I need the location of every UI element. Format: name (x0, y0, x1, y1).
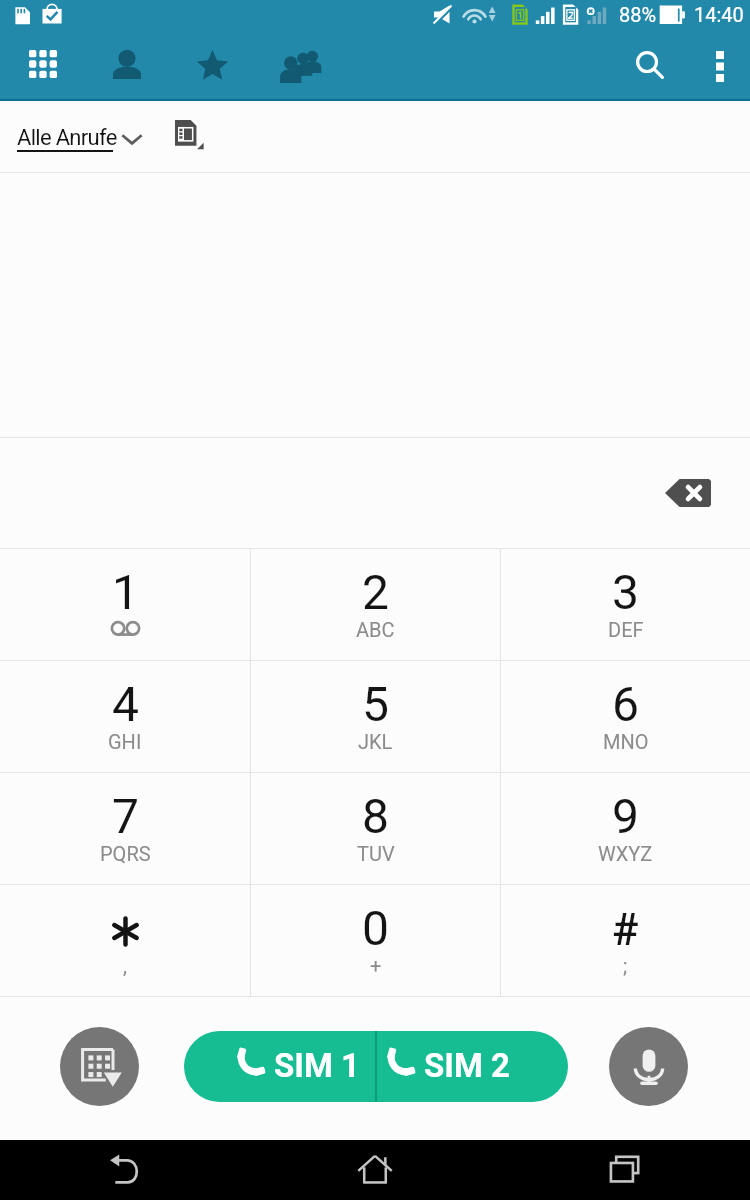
button[interactable]: 8 (251, 773, 500, 884)
button[interactable]: Dialpad (0, 31, 85, 99)
button[interactable]: Recent apps (500, 1140, 750, 1200)
staticText: 4 (112, 676, 139, 732)
staticText: DEF (608, 618, 644, 641)
button[interactable]: Alle Anrufe (0, 123, 146, 151)
staticText: 2 (362, 564, 389, 620)
button[interactable]: 9 (501, 773, 750, 884)
button[interactable]: Groups (257, 31, 345, 99)
button[interactable]: Contacts (85, 31, 168, 99)
button[interactable]: Home (250, 1140, 500, 1200)
staticText: Alle Anrufe (17, 125, 117, 151)
button[interactable]: , (0, 885, 250, 996)
staticText: 9 (612, 788, 639, 844)
button[interactable]: 3 (501, 549, 750, 660)
staticText: 1 (112, 564, 139, 620)
staticText: 88% (619, 3, 657, 26)
staticText: 0 (362, 900, 389, 956)
button[interactable]: SIM 2 (377, 1031, 568, 1102)
button[interactable]: Voice search (609, 1027, 688, 1106)
staticText: SIM 1 (274, 1046, 360, 1085)
button[interactable]: 6 (501, 661, 750, 772)
button[interactable]: 7 (0, 773, 250, 884)
button[interactable]: Hide dialpad (60, 1027, 139, 1106)
button[interactable]: Back (0, 1140, 250, 1200)
button[interactable]: 2 (251, 549, 500, 660)
button[interactable]: 4 (0, 661, 250, 772)
staticText: 8 (362, 788, 389, 844)
staticText: MNO (603, 730, 649, 753)
staticText: GHI (108, 730, 142, 753)
staticText: SIM 2 (424, 1046, 510, 1085)
staticText: # (612, 904, 639, 956)
staticText: 14:40 (694, 3, 744, 26)
staticText: 7 (112, 788, 139, 844)
staticText: ABC (356, 618, 395, 641)
staticText: 5 (362, 676, 389, 732)
staticText: WXYZ (598, 842, 653, 865)
button[interactable]: SIM selection (171, 110, 221, 164)
button[interactable]: # (501, 885, 750, 996)
button[interactable]: Backspace (665, 479, 711, 507)
staticText: 3 (612, 564, 639, 620)
button[interactable]: 5 (251, 661, 500, 772)
staticText: + (370, 954, 382, 977)
button[interactable]: SIM 1 (184, 1031, 375, 1102)
button[interactable]: 0 (251, 885, 500, 996)
staticText: PQRS (100, 842, 151, 865)
staticText: TUV (357, 842, 395, 865)
button[interactable]: 1 (0, 549, 250, 660)
staticText: ; (623, 954, 628, 977)
staticText: 6 (612, 676, 639, 732)
button[interactable]: Favorites (168, 31, 257, 99)
staticText: , (123, 954, 127, 977)
staticText: JKL (358, 730, 393, 753)
button[interactable]: Search (616, 31, 684, 99)
button[interactable]: More options (690, 31, 750, 99)
